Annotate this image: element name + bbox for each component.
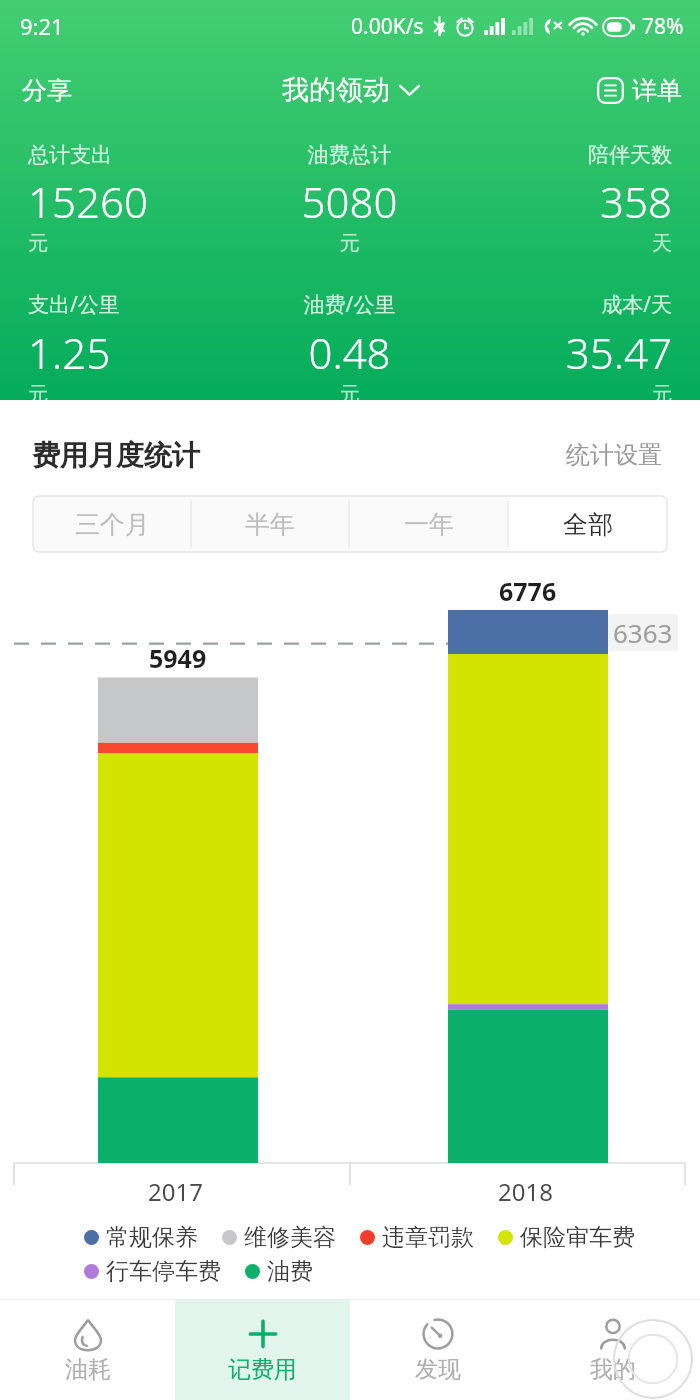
button[interactable]: 一年 [349,496,508,552]
staticText: 油费/公里 [242,290,457,319]
staticText: 陪伴天数 [457,142,672,168]
staticText: 我的 [590,1355,636,1384]
staticText: 分享 [22,75,72,106]
button[interactable]: 油耗 Fuel consumption [0,1300,175,1400]
staticText: 三个月 [75,509,150,540]
button[interactable]: 我的领动 [270,63,431,117]
staticText: 35.47 [457,324,672,381]
staticText: 78% [642,12,684,41]
staticText: 常规保养 [106,1223,198,1252]
staticText: 我的领动 [282,73,390,107]
staticText: 15260 [28,173,242,230]
staticText: 保险审车费 [520,1223,635,1252]
staticText: 全部 [563,509,613,540]
staticText: 行车停车费 [106,1257,221,1286]
staticText: 成本/天 [457,290,672,319]
staticText: 5949 [149,641,207,675]
staticText: 5080 [242,173,457,230]
staticText: 支出/公里 [28,290,242,319]
staticText: 统计设置 [566,440,662,470]
staticText: 1.25 [28,324,242,381]
staticText: 半年 [245,509,295,540]
button[interactable]: 全部 [508,496,667,552]
button[interactable]: 半年 [191,496,349,552]
staticText: 违章罚款 [382,1223,474,1252]
staticText: 发现 [415,1355,461,1384]
staticText: 油耗 [65,1355,111,1384]
button[interactable]: 发现 Discover [350,1300,525,1400]
staticText: 0.00K/s [351,12,424,41]
staticText: 0.48 [242,324,457,381]
staticText: 详单 [632,75,682,106]
staticText: 天 [457,231,672,256]
staticText: 费用月度统计 [32,438,200,473]
button[interactable]: 统计设置 [560,434,668,476]
button[interactable]: 分享 [0,65,94,116]
button[interactable]: 记费用 Add expense [175,1300,350,1400]
button[interactable]: 三个月 [33,496,191,552]
staticText: 6776 [499,574,557,608]
staticText: 2017 [148,1175,203,1208]
staticText: 维修美容 [244,1223,336,1252]
staticText: 2018 [498,1175,553,1208]
staticText: 油费 [267,1257,313,1286]
button[interactable]: 我的 Profile [525,1300,700,1400]
staticText: 记费用 [228,1355,297,1384]
staticText: 元 [28,382,242,407]
button[interactable]: 详单 [585,65,700,116]
staticText: 9:21 [20,11,64,41]
staticText: 元 [457,382,672,407]
staticText: 358 [457,173,672,230]
staticText: 元 [242,231,457,256]
staticText: 6363 [613,615,673,650]
staticText: 油费总计 [242,142,457,168]
staticText: 一年 [404,509,454,540]
staticText: 元 [242,382,457,407]
staticText: 元 [28,231,242,256]
staticText: 总计支出 [28,142,242,168]
